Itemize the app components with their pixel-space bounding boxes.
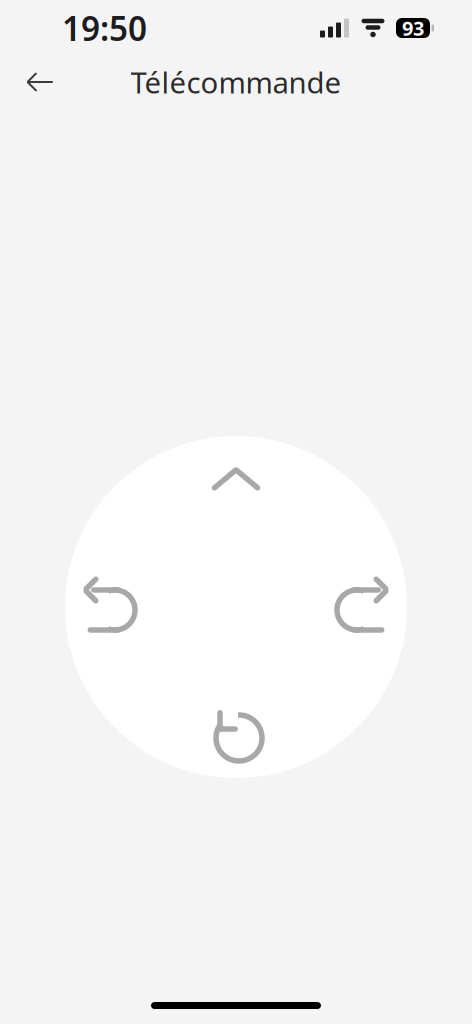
staticText: 93	[402, 15, 424, 41]
button[interactable]: Réinitialiser	[193, 692, 279, 778]
button[interactable]: Annuler	[65, 564, 151, 650]
button[interactable]: Haut	[193, 440, 279, 518]
staticText: 19:50	[62, 6, 147, 50]
button[interactable]: Retour	[14, 58, 66, 106]
staticText: Télécommande	[130, 62, 341, 101]
button[interactable]: Rétablir	[321, 564, 407, 650]
